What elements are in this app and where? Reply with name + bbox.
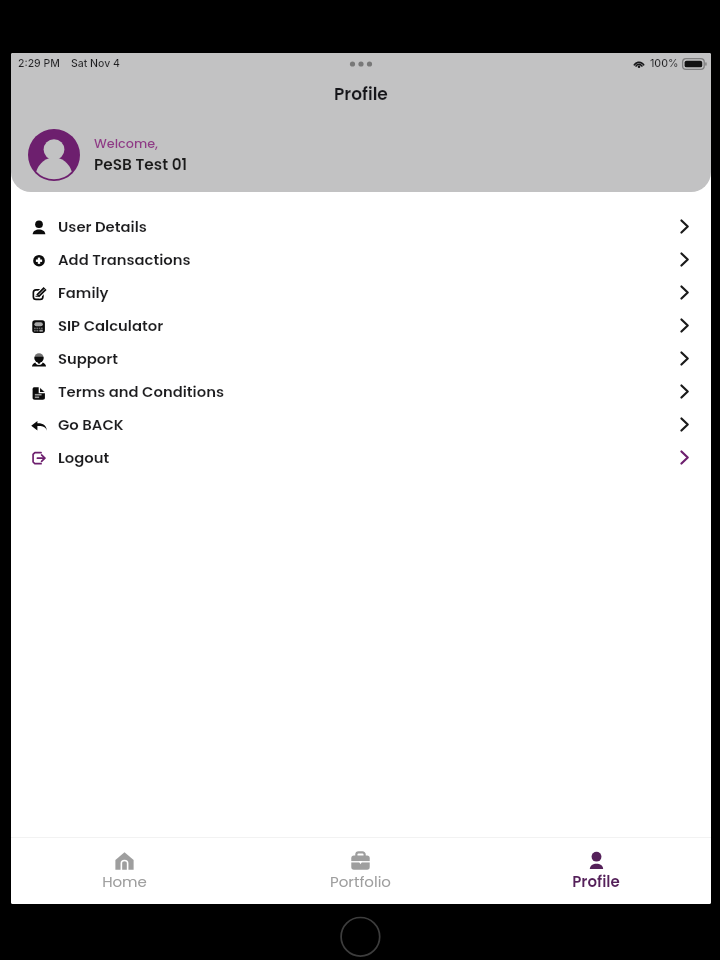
button[interactable]: Home — [11, 838, 242, 904]
button[interactable]: Add Transactions — [11, 243, 711, 276]
staticText: Welcome, — [94, 135, 158, 153]
staticText: Add Transactions — [58, 249, 191, 270]
staticText: Support — [58, 348, 119, 369]
button[interactable]: Portfolio — [242, 838, 478, 904]
staticText: SIP Calculator — [58, 315, 164, 336]
button[interactable]: Profile — [478, 838, 711, 904]
staticText: Sat Nov 4 — [71, 57, 120, 70]
staticText: Terms and Conditions — [58, 381, 224, 402]
button[interactable]: SIP Calculator — [11, 309, 711, 342]
staticText: 100% — [650, 57, 679, 70]
button[interactable]: Support — [11, 342, 711, 375]
staticText: PeSB Test 01 — [94, 154, 188, 175]
staticText: Go BACK — [58, 414, 124, 435]
button[interactable]: Terms and Conditions — [11, 375, 711, 408]
button[interactable]: Logout — [11, 441, 711, 474]
staticText: Logout — [58, 447, 110, 468]
button[interactable]: Go BACK — [11, 408, 711, 441]
button[interactable]: User Details — [11, 210, 711, 243]
staticText: Portfolio — [330, 871, 391, 892]
staticText: Home — [102, 871, 147, 892]
staticText: Profile — [572, 871, 620, 892]
staticText: Profile — [334, 82, 388, 106]
button[interactable]: Family — [11, 276, 711, 309]
staticText: User Details — [58, 216, 147, 237]
staticText: 2:29 PM — [18, 57, 60, 70]
staticText: Family — [58, 282, 109, 303]
